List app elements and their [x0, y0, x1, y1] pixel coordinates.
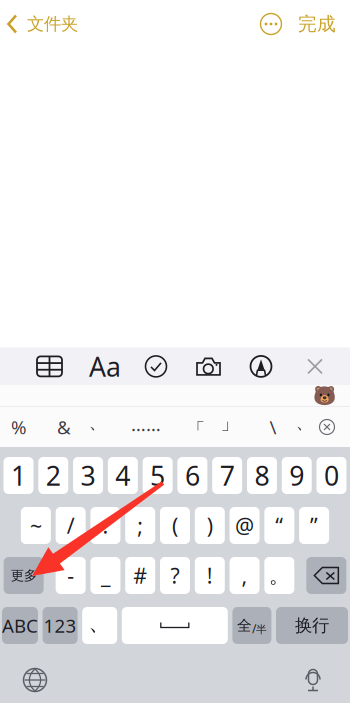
staticText: 9 [289, 458, 304, 493]
staticText: / [252, 620, 256, 636]
button[interactable]: More [252, 2, 290, 46]
button[interactable]: 7 [212, 457, 242, 494]
staticText: . [102, 511, 108, 540]
staticText: 8 [254, 458, 269, 493]
button[interactable]: 123 [43, 607, 78, 644]
button[interactable]: ) [195, 507, 225, 544]
button[interactable]: Next keyboard [23, 668, 47, 692]
button[interactable]: 换行 [276, 607, 348, 644]
staticText: _ [101, 561, 110, 590]
staticText: Aa [89, 349, 121, 384]
button[interactable]: Markup [216, 347, 306, 385]
staticText: 5 [150, 458, 165, 493]
staticText: ” [310, 511, 318, 540]
staticText: ; [137, 511, 143, 540]
button[interactable]: ! [195, 557, 225, 594]
button[interactable]: ~ [21, 507, 51, 544]
button[interactable]: - [56, 557, 86, 594]
button[interactable]: 更多 [4, 557, 44, 594]
button[interactable]: . [90, 507, 120, 544]
button[interactable]: 9 [282, 457, 312, 494]
staticText: 6 [185, 458, 200, 493]
staticText: 、 [88, 609, 111, 636]
button[interactable]: ” [299, 507, 329, 544]
button[interactable]: 完成 [290, 2, 350, 46]
button[interactable]: 。 [264, 557, 294, 594]
staticText: “ [275, 511, 283, 540]
staticText: % [11, 415, 27, 439]
staticText: # [133, 561, 147, 590]
button[interactable]: ( [160, 507, 190, 544]
button[interactable]: _ [90, 557, 120, 594]
staticText: / [67, 511, 75, 540]
staticText: 3 [81, 458, 96, 493]
staticText: ! [207, 561, 213, 590]
staticText: @ [235, 511, 254, 540]
button[interactable]: 2 [38, 457, 68, 494]
staticText: - [67, 561, 74, 590]
button[interactable]: # [125, 557, 155, 594]
button[interactable]: 、 [82, 607, 117, 644]
staticText: ~ [30, 511, 42, 540]
staticText: ? [170, 561, 179, 590]
staticText: 」 [220, 411, 239, 434]
button[interactable]: 」 [206, 410, 254, 444]
button[interactable]: 文件夹 [0, 2, 88, 46]
staticText: & [57, 415, 71, 439]
button[interactable]: Dictation [304, 668, 322, 692]
staticText: 、 [295, 410, 314, 433]
button[interactable]: Full or half width [232, 607, 271, 644]
staticText: ( [172, 511, 178, 540]
staticText: 1 [11, 458, 26, 493]
button[interactable]: \ [254, 410, 292, 444]
button[interactable]: Checklist [111, 347, 201, 385]
button[interactable]: @ [230, 507, 260, 544]
button[interactable]: Close keyboard [306, 347, 324, 385]
button[interactable]: / [56, 507, 86, 544]
button[interactable]: 5 [143, 457, 173, 494]
button[interactable]: 8 [247, 457, 277, 494]
staticText: ABC [2, 613, 38, 638]
button[interactable]: % [0, 410, 38, 444]
staticText: 、 [88, 410, 107, 433]
button[interactable]: “ [264, 507, 294, 544]
staticText: 文件夹 [27, 13, 78, 35]
button[interactable]: 0 [316, 457, 346, 494]
staticText: 2 [46, 458, 61, 493]
staticText: 0 [324, 458, 339, 493]
button[interactable]: 1 [3, 457, 33, 494]
button[interactable]: ABC [2, 607, 38, 644]
staticText: 半 [256, 623, 267, 636]
button[interactable]: 4 [108, 457, 138, 494]
button[interactable]: Space [122, 607, 228, 644]
button[interactable]: & [38, 410, 90, 444]
button[interactable]: Text format [99, 347, 111, 385]
button[interactable]: Table [0, 347, 99, 385]
button[interactable]: ? [160, 557, 190, 594]
button[interactable]: , [230, 557, 260, 594]
button[interactable]: ; [125, 507, 155, 544]
staticText: 换行 [295, 615, 329, 636]
staticText: 完成 [298, 12, 336, 35]
staticText: 全 [237, 616, 252, 634]
button[interactable]: 、 [90, 410, 106, 444]
button[interactable]: Delete [306, 557, 346, 594]
staticText: 更多 [11, 567, 37, 584]
button[interactable]: 、 [292, 410, 318, 444]
staticText: 7 [220, 458, 235, 493]
staticText: \ [269, 415, 276, 439]
staticText: , [242, 561, 248, 590]
button[interactable]: …… [106, 410, 186, 444]
button[interactable]: Clear [318, 410, 336, 444]
button[interactable]: 「 [186, 410, 206, 444]
staticText: ) [207, 511, 213, 540]
button[interactable]: Camera [201, 347, 216, 385]
staticText: 「 [186, 418, 205, 441]
button[interactable]: 6 [177, 457, 207, 494]
staticText: 。 [269, 562, 290, 589]
staticText: 123 [44, 613, 77, 638]
button[interactable]: 3 [73, 457, 103, 494]
staticText: 4 [115, 458, 130, 493]
staticText: 🐻 [313, 385, 336, 406]
staticText: …… [131, 412, 161, 436]
